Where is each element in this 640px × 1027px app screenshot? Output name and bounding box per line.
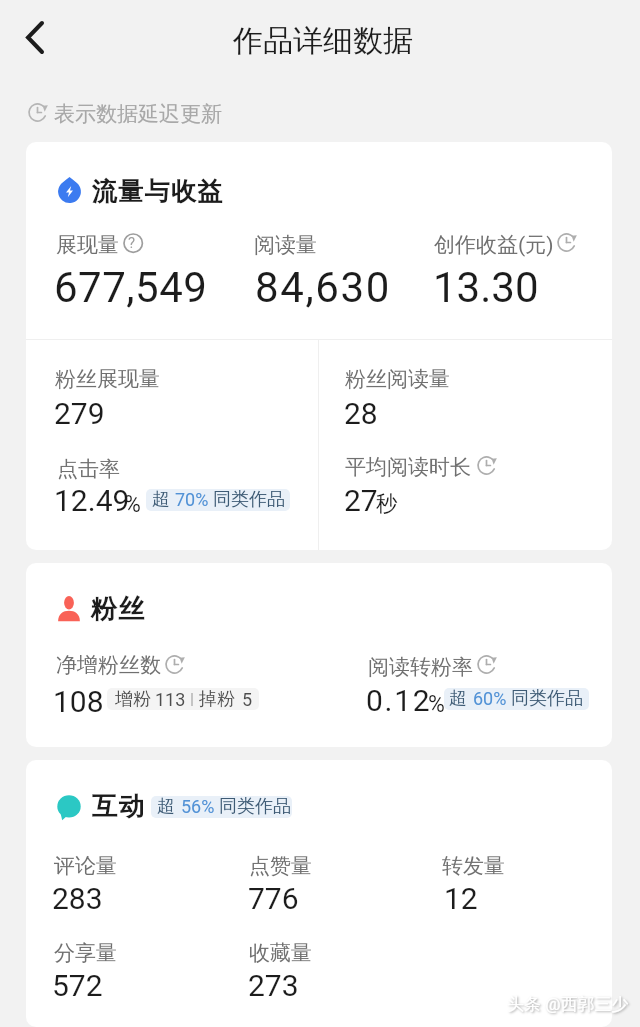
staticText: % [428, 691, 445, 718]
staticText: 同类作品 [213, 488, 285, 511]
staticText: 12 [444, 881, 478, 916]
button[interactable] [146, 489, 290, 511]
staticText: 展现量 [56, 232, 119, 258]
staticText: 13.30 [433, 263, 539, 312]
staticText: 84,630 [255, 263, 391, 312]
staticText: 阅读转粉率 [368, 654, 473, 680]
staticText: 转发量 [442, 853, 505, 879]
staticText: 净增粉丝数 [56, 652, 161, 678]
staticText: 572 [52, 968, 103, 1003]
staticText: 27 [344, 483, 378, 518]
staticText: 增粉 [115, 688, 151, 711]
staticText: 113 [155, 689, 186, 710]
staticText: 108 [53, 684, 104, 719]
staticText: 作品详细数据 [3, 22, 640, 60]
staticText: 同类作品 [511, 687, 583, 710]
staticText: 0.12 [366, 683, 432, 718]
staticText: 粉丝阅读量 [345, 366, 450, 392]
staticText: ? [128, 234, 136, 252]
button[interactable]: Back [6, 8, 64, 66]
staticText: 平均阅读时长 [345, 454, 471, 480]
button[interactable] [107, 688, 259, 710]
staticText: 同类作品 [219, 795, 291, 818]
staticText: 互动 [91, 790, 145, 822]
staticText: 秒 [376, 490, 398, 517]
staticText: 70% [175, 489, 209, 510]
staticText: 收藏量 [249, 940, 312, 966]
staticText: 12.49 [54, 483, 130, 518]
staticText: 阅读量 [254, 232, 317, 258]
staticText: 点击率 [57, 456, 120, 482]
staticText: 分享量 [54, 940, 117, 966]
staticText: 60% [473, 688, 507, 709]
button[interactable] [444, 688, 589, 710]
staticText: 56% [181, 796, 215, 817]
staticText: 超 [152, 488, 170, 511]
staticText: 点赞量 [249, 853, 312, 879]
staticText: % [124, 491, 141, 518]
staticText: 28 [344, 396, 378, 431]
staticText: 流量与收益 [91, 176, 223, 207]
staticText: 头条 @西郭三少 [507, 994, 629, 1015]
staticText: 粉丝 [90, 593, 145, 626]
staticText: 5 [242, 689, 253, 710]
staticText: 粉丝展现量 [55, 366, 160, 392]
staticText: 283 [52, 881, 103, 916]
staticText: 279 [54, 396, 105, 431]
staticText: 表示数据延迟更新 [54, 101, 222, 127]
button[interactable] [26, 760, 612, 1027]
staticText: 273 [248, 968, 299, 1003]
staticText: 评论量 [54, 853, 117, 879]
staticText: 超 [449, 687, 467, 710]
button[interactable] [26, 563, 612, 747]
staticText: 776 [248, 881, 299, 916]
button[interactable] [151, 796, 292, 818]
button[interactable] [26, 142, 612, 550]
staticText: 掉粉 [199, 688, 235, 711]
staticText: 超 [157, 795, 175, 818]
staticText: 677,549 [54, 263, 208, 312]
staticText: 创作收益(元) [434, 232, 554, 258]
